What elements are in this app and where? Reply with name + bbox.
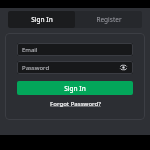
staticText: Password — [22, 64, 50, 72]
staticText: Sign In — [64, 84, 86, 93]
button[interactable]: Register — [75, 11, 142, 28]
staticText: Forgot Password? — [50, 100, 101, 108]
button[interactable]: Show password — [119, 63, 128, 72]
button[interactable]: Sign In — [8, 11, 75, 28]
button[interactable]: Sign In — [17, 81, 133, 95]
staticText: Sign In — [31, 15, 53, 24]
staticText: Email — [22, 46, 38, 54]
button[interactable]: Forgot Password? — [48, 99, 103, 109]
button[interactable]: Email — [17, 43, 133, 56]
button[interactable]: Password — [17, 61, 133, 74]
staticText: Register — [96, 15, 122, 24]
